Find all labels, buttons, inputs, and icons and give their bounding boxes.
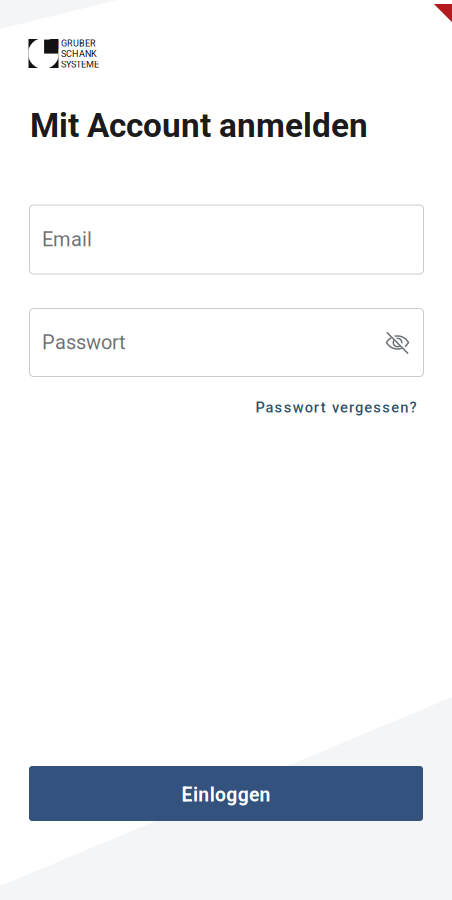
button[interactable]: Email bbox=[29, 205, 423, 274]
staticText: Passwort bbox=[42, 331, 126, 354]
staticText: Passwort vergessen? bbox=[255, 399, 416, 416]
staticText: GRUBER bbox=[61, 38, 96, 49]
button[interactable]: Passwort bbox=[29, 308, 423, 376]
staticText: Einloggen bbox=[182, 784, 270, 806]
staticText: Email bbox=[42, 228, 92, 251]
button[interactable]: Passwort anzeigen bbox=[375, 321, 409, 364]
staticText: SYSTEME bbox=[61, 59, 99, 70]
staticText: SCHANK bbox=[61, 49, 97, 59]
button[interactable]: Passwort vergessen? bbox=[255, 399, 416, 416]
button[interactable]: Einloggen bbox=[29, 766, 423, 821]
staticText: Mit Account anmelden bbox=[30, 106, 368, 145]
